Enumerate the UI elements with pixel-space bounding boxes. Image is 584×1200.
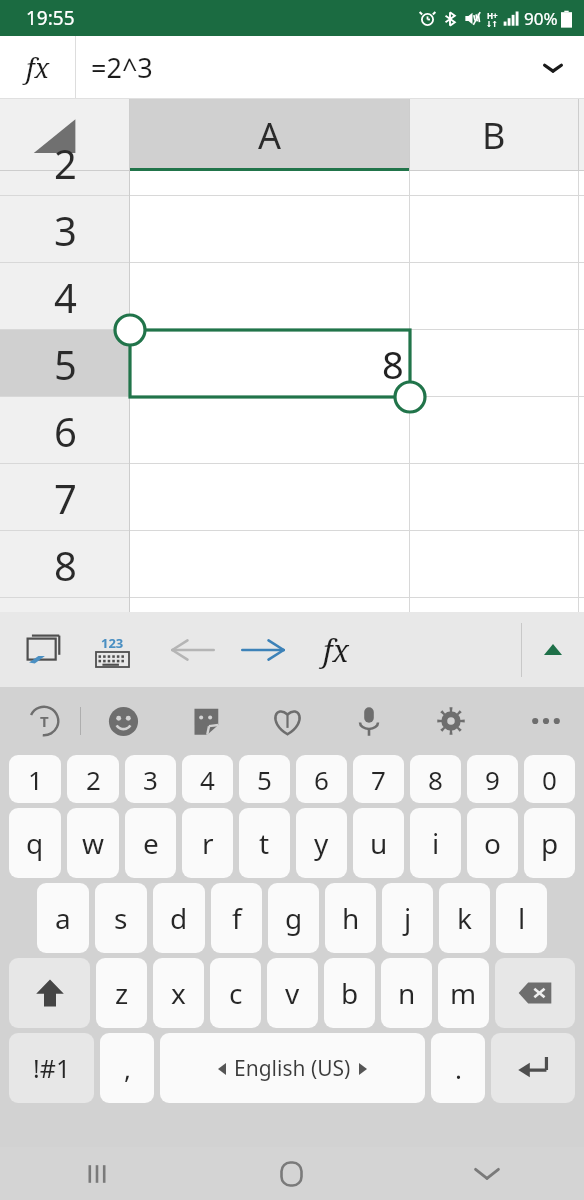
- button[interactable]: Home: [194, 1147, 389, 1200]
- staticText: 3: [143, 762, 158, 797]
- staticText: =2^3: [91, 49, 153, 86]
- button[interactable]: More options: [520, 695, 572, 747]
- button[interactable]: Keyboard settings: [425, 695, 477, 747]
- button[interactable]: Emoji: [97, 695, 149, 747]
- button[interactable]: 7: [0, 464, 130, 531]
- button[interactable]: 6: [296, 755, 347, 803]
- button[interactable]: Bitmoji: [261, 695, 313, 747]
- button[interactable]: m: [438, 958, 489, 1028]
- staticText: 4: [54, 270, 77, 324]
- button[interactable]: d: [153, 883, 205, 953]
- button[interactable]: Previous cell: [162, 619, 224, 681]
- staticText: e: [143, 824, 159, 862]
- button[interactable]: ,: [100, 1033, 154, 1103]
- button[interactable]: k: [439, 883, 490, 953]
- button[interactable]: 9: [467, 755, 518, 803]
- staticText: 9: [485, 762, 500, 797]
- button[interactable]: 3: [0, 196, 130, 263]
- button[interactable]: g: [268, 883, 319, 953]
- staticText: 7: [371, 762, 386, 797]
- staticText: 8: [428, 762, 443, 797]
- button[interactable]: 1: [9, 755, 61, 803]
- staticText: i: [432, 824, 440, 862]
- button[interactable]: !#1: [9, 1033, 94, 1103]
- button[interactable]: b: [324, 958, 375, 1028]
- button[interactable]: Stickers: [179, 695, 231, 747]
- button[interactable]: Backspace: [495, 958, 575, 1028]
- button[interactable]: A: [130, 99, 410, 171]
- button[interactable]: Recents: [0, 1147, 194, 1200]
- button[interactable]: 8: [410, 755, 461, 803]
- staticText: !#1: [33, 1051, 71, 1085]
- button[interactable]: n: [381, 958, 432, 1028]
- button[interactable]: Number keyboard: [84, 622, 140, 678]
- button[interactable]: p: [524, 808, 575, 878]
- button[interactable]: Collapse: [522, 612, 584, 687]
- button[interactable]: j: [382, 883, 433, 953]
- button[interactable]: Expand formula bar: [522, 36, 584, 99]
- button[interactable]: Next cell: [232, 619, 294, 681]
- staticText: .: [455, 1051, 462, 1086]
- button[interactable]: 2: [0, 129, 130, 196]
- button[interactable]: 2: [67, 755, 119, 803]
- button[interactable]: f: [211, 883, 262, 953]
- staticText: h: [342, 899, 360, 937]
- button[interactable]: q: [9, 808, 61, 878]
- button[interactable]: 8: [130, 330, 410, 397]
- button[interactable]: Sheets: [14, 622, 70, 678]
- button[interactable]: Voice input: [343, 695, 395, 747]
- button[interactable]: i: [410, 808, 461, 878]
- staticText: l: [518, 899, 526, 937]
- button[interactable]: Translate: [18, 695, 70, 747]
- button[interactable]: z: [96, 958, 147, 1028]
- staticText: x: [171, 974, 186, 1012]
- button[interactable]: x: [153, 958, 204, 1028]
- staticText: 5: [54, 337, 77, 391]
- button[interactable]: t: [239, 808, 290, 878]
- button[interactable]: 4: [182, 755, 233, 803]
- button[interactable]: 5: [0, 330, 130, 397]
- staticText: 6: [314, 762, 329, 797]
- button[interactable]: Insert function: [0, 36, 75, 99]
- button[interactable]: c: [210, 958, 261, 1028]
- button[interactable]: B: [410, 99, 578, 171]
- staticText: ,: [124, 1051, 131, 1086]
- button[interactable]: 6: [0, 397, 130, 464]
- staticText: q: [26, 824, 44, 862]
- button[interactable]: .: [431, 1033, 485, 1103]
- button[interactable]: 5: [239, 755, 290, 803]
- button[interactable]: r: [182, 808, 233, 878]
- staticText: 4: [200, 762, 215, 797]
- button[interactable]: u: [353, 808, 404, 878]
- staticText: k: [457, 899, 472, 937]
- button[interactable]: Enter: [491, 1033, 575, 1103]
- button[interactable]: w: [67, 808, 119, 878]
- button[interactable]: e: [125, 808, 176, 878]
- button[interactable]: Hide keyboard: [389, 1147, 584, 1200]
- button[interactable]: h: [325, 883, 376, 953]
- staticText: 8: [382, 338, 404, 390]
- button[interactable]: s: [95, 883, 147, 953]
- button[interactable]: 0: [524, 755, 575, 803]
- button[interactable]: l: [496, 883, 547, 953]
- button[interactable]: 4: [0, 263, 130, 330]
- staticText: 8: [54, 538, 77, 592]
- staticText: z: [115, 974, 129, 1012]
- staticText: t: [259, 824, 270, 862]
- button[interactable]: Shift: [9, 958, 90, 1028]
- button[interactable]: 3: [125, 755, 176, 803]
- button[interactable]: o: [467, 808, 518, 878]
- button[interactable]: Space, English (US): [160, 1033, 425, 1103]
- button[interactable]: y: [296, 808, 347, 878]
- button[interactable]: 9: [0, 598, 130, 665]
- button[interactable]: Function: [308, 622, 364, 678]
- staticText: 5: [257, 762, 272, 797]
- button[interactable]: 7: [353, 755, 404, 803]
- button[interactable]: v: [267, 958, 318, 1028]
- staticText: 9: [54, 605, 77, 659]
- button[interactable]: 8: [0, 531, 130, 598]
- staticText: v: [285, 974, 300, 1012]
- button[interactable]: =2^3: [76, 36, 522, 99]
- button[interactable]: a: [37, 883, 89, 953]
- staticText: s: [114, 899, 128, 937]
